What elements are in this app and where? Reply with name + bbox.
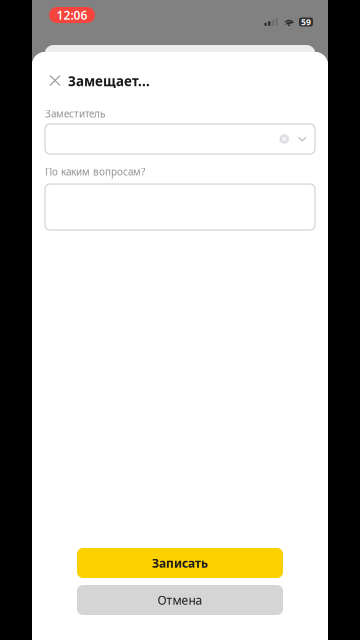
staticText: Записать [152,555,208,571]
staticText: Замещает... [68,72,150,90]
button[interactable]: Закрыть [44,69,66,91]
staticText: 59 [301,16,311,28]
staticText: Отмена [157,592,202,608]
staticText: Заместитель [45,107,105,120]
staticText: 12:06 [56,7,87,23]
button[interactable] [45,124,315,154]
button[interactable]: Записать [77,548,283,578]
button[interactable] [45,184,315,230]
button[interactable]: Отмена [77,585,283,615]
staticText: По каким вопросам? [45,165,145,178]
